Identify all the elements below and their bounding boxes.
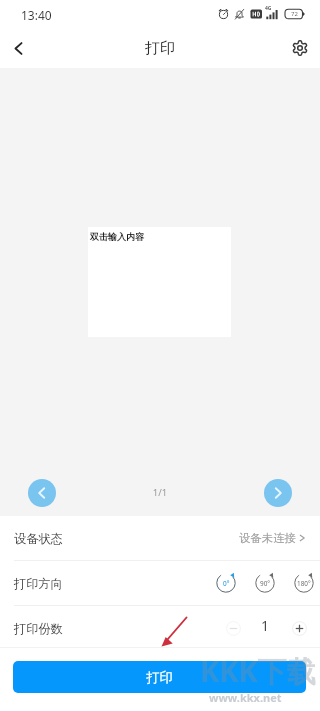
staticText: 打印	[146, 669, 173, 686]
staticText: 打印方向	[14, 576, 63, 591]
button[interactable]: Settings	[280, 28, 320, 68]
staticText: 90°	[260, 579, 271, 588]
button[interactable]: Rotate 180 degrees	[291, 570, 317, 596]
button[interactable]: 设备状态	[0, 516, 320, 560]
button[interactable]: Decrease copies	[221, 616, 245, 640]
staticText: 打印	[145, 39, 175, 58]
button[interactable]: 打印	[13, 661, 306, 693]
button[interactable]: 双击输入内容	[88, 227, 231, 337]
button[interactable]: 打印份数	[0, 606, 320, 650]
button[interactable]: 打印方向	[0, 561, 320, 605]
button[interactable]: Rotate 90 degrees	[252, 570, 278, 596]
staticText: 13:40	[21, 7, 52, 23]
staticText: 180°	[297, 579, 311, 588]
button[interactable]: Previous page	[28, 479, 56, 507]
staticText: 设备状态	[14, 531, 63, 546]
staticText: 0°	[223, 579, 230, 588]
button[interactable]: Back	[0, 30, 37, 67]
staticText: 打印份数	[14, 621, 63, 636]
staticText: 72	[291, 10, 298, 18]
staticText: 1	[244, 616, 286, 635]
button[interactable]: Increase copies	[287, 616, 311, 640]
staticText: 4G	[265, 5, 272, 12]
staticText: 双击输入内容	[90, 231, 144, 242]
staticText: 设备未连接	[239, 531, 296, 545]
button[interactable]: Next page	[264, 479, 292, 507]
staticText: KKK下载	[200, 651, 316, 691]
staticText: www.kkx.net	[209, 690, 282, 705]
button[interactable]: Rotate 0 degrees	[213, 570, 239, 596]
staticText: 1/1	[140, 486, 180, 499]
